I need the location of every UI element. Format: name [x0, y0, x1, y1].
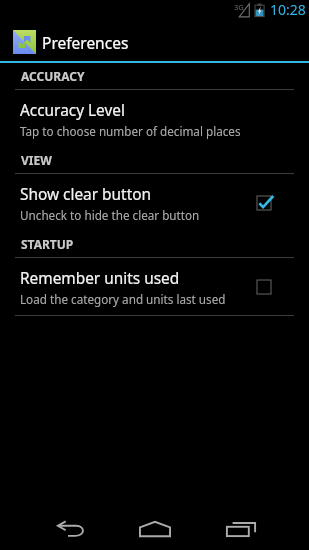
button[interactable]: Show clear button: [0, 174, 309, 231]
staticText: ACCURACY: [21, 68, 85, 84]
staticText: Uncheck to hide the clear button: [20, 207, 200, 223]
button[interactable]: Recent apps: [213, 510, 269, 548]
button[interactable]: Back: [43, 510, 99, 548]
staticText: VIEW: [21, 152, 52, 168]
button[interactable]: Unchecked: [247, 267, 281, 307]
staticText: Show clear button: [20, 184, 152, 205]
staticText: Accuracy Level: [20, 100, 125, 121]
staticText: Load the category and units last used: [20, 291, 226, 307]
staticText: Tap to choose number of decimal places: [20, 123, 241, 139]
button[interactable]: Checked: [247, 183, 281, 223]
button[interactable]: Remember units used: [0, 258, 309, 315]
button[interactable]: Accuracy Level: [0, 90, 309, 147]
staticText: 3G: [234, 2, 244, 12]
staticText: Preferences: [42, 32, 129, 53]
button[interactable]: Preferences: [0, 24, 309, 61]
staticText: 10:28: [270, 0, 306, 19]
staticText: Remember units used: [20, 268, 180, 289]
staticText: STARTUP: [21, 236, 74, 252]
button[interactable]: Home: [127, 510, 183, 548]
